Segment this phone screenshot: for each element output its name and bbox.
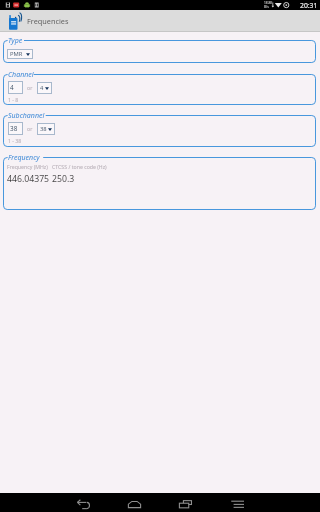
staticText: 1 - 8 <box>8 96 19 103</box>
button[interactable]: Menu <box>221 493 253 512</box>
button[interactable]: 4 <box>8 81 23 94</box>
staticText: Frequency <box>8 153 40 163</box>
staticText: or <box>27 84 33 91</box>
staticText: Frequency (MHz) <box>7 163 48 170</box>
staticText: CTCSS / tone code (Hz) <box>52 163 107 170</box>
staticText: 4 <box>40 84 44 92</box>
staticText: Type <box>8 36 23 46</box>
staticText: or <box>27 125 33 132</box>
button[interactable]: 38 <box>37 123 55 135</box>
staticText: Channel <box>8 70 34 80</box>
button[interactable]: Back <box>67 493 99 512</box>
staticText: Frequencies <box>27 16 69 26</box>
staticText: 446.04375 <box>7 173 50 185</box>
button[interactable]: PMR <box>7 49 33 59</box>
button[interactable]: Recent apps <box>169 493 201 512</box>
staticText: B/s <box>264 5 269 9</box>
staticText: 4 <box>10 83 14 92</box>
staticText: PMR <box>10 50 23 58</box>
staticText: 250.3 <box>52 173 75 185</box>
staticText: 20:31 <box>300 1 318 10</box>
staticText: 38 <box>40 125 47 133</box>
button[interactable]: Home <box>118 493 150 512</box>
button[interactable]: 4 <box>37 82 52 94</box>
staticText: 1 - 38 <box>8 137 22 144</box>
staticText: 38 <box>10 124 18 133</box>
button[interactable]: 38 <box>8 122 23 135</box>
staticText: Subchannel <box>8 111 45 121</box>
staticText: 18.8K <box>264 1 273 5</box>
